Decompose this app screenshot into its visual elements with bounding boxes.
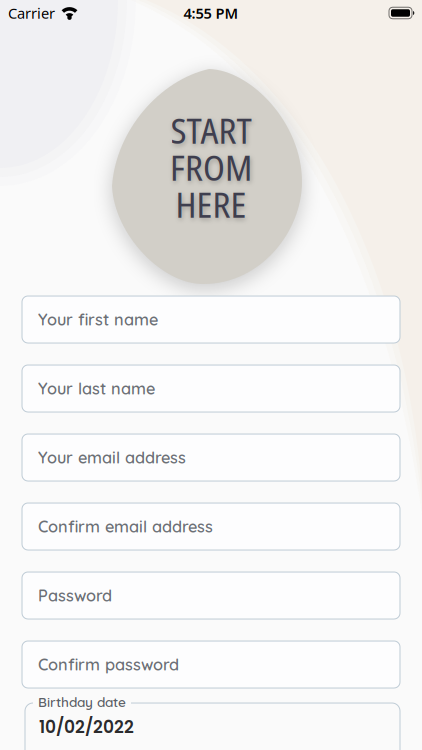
staticText: FROM (170, 143, 252, 191)
staticText: Your first name (38, 309, 158, 330)
staticText: 4:55 PM (183, 3, 238, 23)
button[interactable]: Password (22, 572, 400, 619)
staticText: Your email address (38, 447, 186, 468)
staticText: Confirm password (38, 654, 179, 675)
staticText: Your last name (38, 378, 155, 399)
staticText: Confirm email address (38, 516, 213, 537)
staticText: 10/02/2022 (39, 715, 134, 739)
staticText: HERE (175, 180, 246, 228)
staticText: Carrier (8, 3, 55, 23)
button[interactable]: Your last name (22, 365, 400, 412)
button[interactable]: Your first name (22, 296, 400, 343)
staticText: Birthday date (38, 693, 126, 710)
button[interactable]: Confirm email address (22, 503, 400, 550)
staticText: START (170, 106, 251, 154)
staticText: Password (38, 585, 112, 606)
button[interactable]: Confirm password (22, 641, 400, 688)
button[interactable]: Birthday date (25, 691, 400, 750)
button[interactable]: Your email address (22, 434, 400, 481)
